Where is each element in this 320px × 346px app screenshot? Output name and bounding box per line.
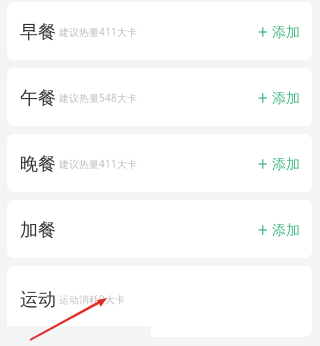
staticText: 早餐 xyxy=(20,21,56,43)
button[interactable]: 添加 xyxy=(246,69,312,127)
staticText: 晚餐 xyxy=(20,153,56,175)
staticText: 建议热量548大卡 xyxy=(59,91,137,105)
staticText: 添加 xyxy=(272,23,300,41)
staticText: 建议热量411大卡 xyxy=(59,157,137,171)
button[interactable]: 添加 xyxy=(246,201,312,259)
staticText: 加餐 xyxy=(20,219,56,241)
staticText: 午餐 xyxy=(20,87,56,109)
button[interactable]: 运动 xyxy=(7,266,312,337)
button[interactable]: 晚餐 xyxy=(7,134,312,192)
button[interactable]: 添加 xyxy=(246,3,312,61)
staticText: 添加 xyxy=(272,89,300,107)
button[interactable]: 加餐 xyxy=(7,200,312,258)
staticText: 建议热量411大卡 xyxy=(59,25,137,39)
staticText: 运动 xyxy=(20,288,56,311)
button[interactable]: 添加 xyxy=(246,135,312,193)
button[interactable]: 早餐 xyxy=(7,2,312,60)
button[interactable]: 午餐 xyxy=(7,68,312,126)
staticText: 添加 xyxy=(272,221,300,239)
staticText: 添加 xyxy=(272,155,300,173)
staticText: 运动消耗0大卡 xyxy=(59,293,125,306)
